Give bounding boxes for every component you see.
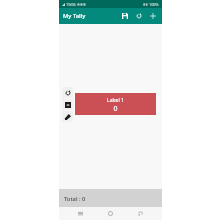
- button[interactable]: Change colour: [62, 99, 73, 110]
- button[interactable]: Home: [95, 207, 125, 220]
- button[interactable]: Label 1: [75, 93, 156, 115]
- button[interactable]: Reset counter: [62, 87, 73, 98]
- button[interactable]: Reset all: [132, 9, 146, 23]
- staticText: Total : 0: [64, 195, 86, 203]
- button[interactable]: Save: [118, 9, 132, 23]
- staticText: 100%: [149, 2, 159, 7]
- staticText: Label 1: [107, 97, 124, 104]
- button[interactable]: Edit label: [62, 111, 73, 122]
- button[interactable]: Add counter: [146, 9, 160, 23]
- button[interactable]: Back: [125, 207, 155, 220]
- button[interactable]: Recents: [66, 207, 95, 220]
- staticText: My Tally: [63, 12, 86, 20]
- staticText: 19:06: [66, 2, 76, 7]
- staticText: 0: [113, 104, 118, 114]
